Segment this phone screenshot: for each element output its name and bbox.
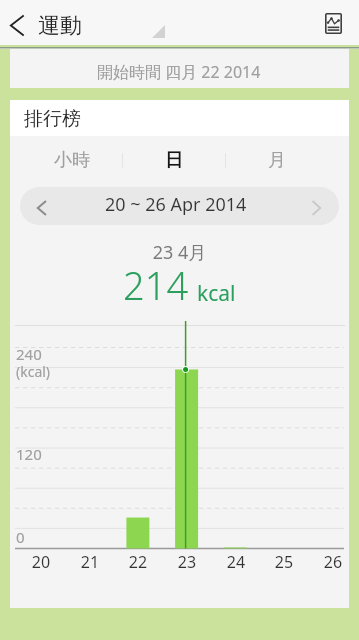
- staticText: 24: [224, 551, 248, 573]
- staticText: 120: [16, 444, 42, 464]
- button[interactable]: Previous week: [20, 189, 62, 225]
- staticText: 22: [126, 551, 150, 573]
- staticText: 0: [16, 527, 25, 547]
- button[interactable]: 日: [123, 143, 225, 177]
- button[interactable]: 月: [226, 143, 328, 177]
- button[interactable]: Back: [2, 3, 30, 48]
- staticText: 日: [165, 149, 183, 172]
- staticText: 小時: [54, 149, 90, 172]
- staticText: 月: [268, 149, 286, 172]
- staticText: kcal: [197, 279, 236, 308]
- staticText: 21: [78, 551, 102, 573]
- staticText: 20 ~ 26 Apr 2014: [105, 192, 247, 217]
- staticText: 23 4月: [10, 240, 349, 265]
- staticText: 240: [16, 344, 42, 364]
- staticText: 排行榜: [24, 107, 81, 131]
- button[interactable]: Report: [318, 1, 348, 46]
- button[interactable]: 小時: [21, 143, 122, 177]
- staticText: 26: [321, 551, 345, 573]
- staticText: 25: [272, 551, 296, 573]
- staticText: 23: [175, 551, 199, 573]
- staticText: 214: [123, 259, 189, 311]
- staticText: 開始時間 四月 22 2014: [97, 61, 261, 83]
- button[interactable]: Next week: [295, 189, 337, 225]
- button[interactable]: 開始時間 四月 22 2014: [10, 48, 349, 88]
- staticText: 20: [29, 551, 53, 573]
- staticText: (kcal): [16, 362, 51, 381]
- staticText: 運動: [38, 12, 82, 40]
